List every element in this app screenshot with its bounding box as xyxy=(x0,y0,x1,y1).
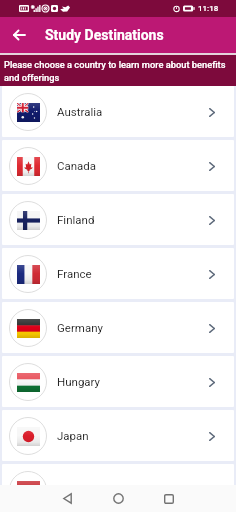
button[interactable]: Germany xyxy=(2,302,234,353)
button[interactable]: Hungary xyxy=(2,356,234,407)
staticText: Germany xyxy=(57,321,103,334)
button[interactable]: France xyxy=(2,248,234,299)
staticText: Australia xyxy=(57,105,103,118)
button[interactable]: Recent apps xyxy=(152,485,186,512)
staticText: Canada xyxy=(57,159,97,172)
button[interactable]: Back xyxy=(7,23,31,47)
staticText: Finland xyxy=(57,213,95,226)
staticText: Please choose a country to learn more ab… xyxy=(4,59,234,83)
button[interactable]: Home xyxy=(101,485,135,512)
button[interactable]: Finland xyxy=(2,194,234,245)
staticText: Japan xyxy=(57,429,89,442)
button[interactable]: Back xyxy=(50,485,84,512)
staticText: France xyxy=(57,267,92,280)
staticText: 11:18 xyxy=(198,4,219,13)
button[interactable]: Canada xyxy=(2,140,234,191)
button[interactable]: Latvia xyxy=(2,464,234,485)
staticText: Hungary xyxy=(57,375,101,388)
button[interactable]: Australia xyxy=(2,86,234,137)
staticText: Study Destinations xyxy=(45,27,164,43)
button[interactable]: Japan xyxy=(2,410,234,461)
